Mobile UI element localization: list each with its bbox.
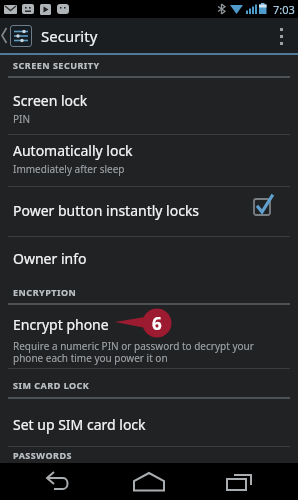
button[interactable]: Encrypt phone: [0, 305, 298, 368]
button[interactable]: Set up SIM card lock: [0, 399, 298, 446]
staticText: SCREEN SECURITY: [13, 59, 100, 71]
button[interactable]: Screen lock: [0, 78, 298, 134]
staticText: Power button instantly locks: [13, 201, 200, 220]
button[interactable]: Owner info: [0, 237, 298, 280]
button[interactable]: Security: [0, 18, 298, 53]
staticText: ENCRYPTION: [13, 286, 77, 298]
staticText: 6: [152, 312, 162, 335]
staticText: PIN: [13, 112, 31, 126]
staticText: Screen lock: [13, 91, 88, 110]
button[interactable]: [29, 463, 89, 500]
button[interactable]: [268, 18, 298, 53]
staticText: Owner info: [13, 249, 87, 268]
staticText: Security: [41, 26, 98, 46]
button[interactable]: [119, 463, 179, 500]
staticText: PASSWORDS: [13, 449, 72, 461]
staticText: Automatically lock: [13, 141, 133, 160]
button[interactable]: [209, 463, 269, 500]
staticText: 7:03: [273, 2, 295, 17]
button[interactable]: Automatically lock: [0, 135, 298, 186]
staticText: Encrypt phone: [13, 315, 109, 334]
staticText: Immediately after sleep: [13, 162, 125, 176]
staticText: Set up SIM card lock: [13, 415, 146, 434]
staticText: Require a numeric PIN or password to dec…: [13, 339, 254, 365]
button[interactable]: Power button instantly locks: [0, 187, 298, 236]
staticText: SIM CARD LOCK: [13, 379, 90, 391]
